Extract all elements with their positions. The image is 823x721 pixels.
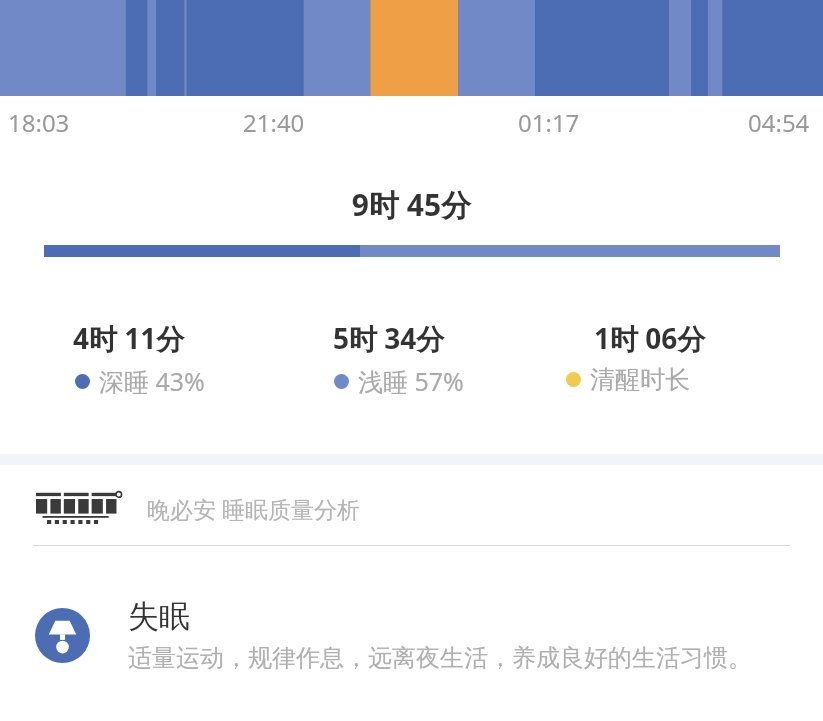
staticText: 04:54 [748, 106, 810, 139]
staticText: 18:03 [8, 106, 70, 139]
staticText: 4时 11分 [73, 319, 185, 357]
staticText: 1时 06分 [594, 319, 706, 357]
button[interactable]: 失眠 [35, 597, 803, 673]
staticText: 01:17 [518, 106, 580, 139]
staticText: 5时 34分 [333, 319, 445, 357]
other: 失眠 [35, 608, 90, 663]
button[interactable]: 晚必安 睡眠质量分析 [36, 488, 823, 528]
staticText: 晚必安 睡眠质量分析 [147, 493, 360, 524]
staticText: 浅睡 57% [358, 364, 464, 398]
staticText: 适量运动，规律作息，远离夜生活，养成良好的生活习惯。 [128, 643, 752, 673]
staticText: 9时 45分 [0, 184, 823, 225]
staticText: 深睡 43% [99, 364, 205, 398]
staticText: 21:40 [243, 106, 305, 139]
staticText: 失眠 [128, 597, 190, 636]
staticText: 清醒时长 [590, 364, 690, 395]
